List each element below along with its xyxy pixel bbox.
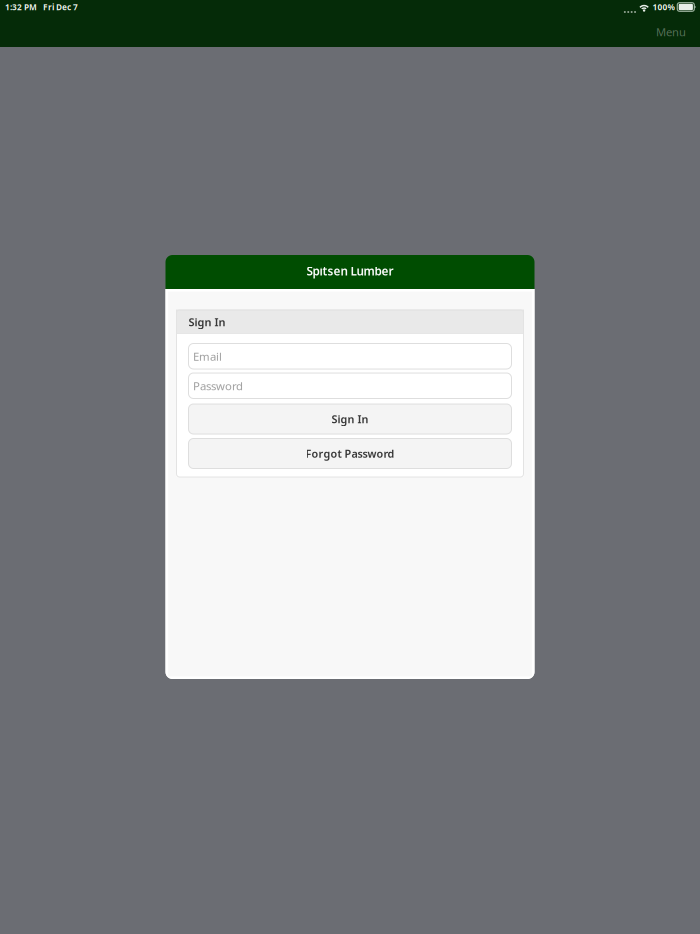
staticText: Password <box>193 378 243 393</box>
staticText: Sign In <box>188 315 225 329</box>
staticText: Menu <box>656 24 686 40</box>
button[interactable]: Forgot Password <box>188 438 511 468</box>
button[interactable]: Menu <box>642 19 700 45</box>
staticText: Forgot Password <box>305 446 394 461</box>
staticText: Sign In <box>331 412 368 426</box>
staticText: 1:32 PM <box>5 1 37 13</box>
button[interactable]: Password <box>188 373 511 398</box>
staticText: Fri Dec 7 <box>37 1 78 13</box>
staticText: 100% <box>652 1 674 13</box>
button[interactable]: Sign In <box>188 404 511 434</box>
staticText: Email <box>193 348 222 364</box>
button[interactable]: Email <box>188 343 511 369</box>
staticText: Spitsen Lumber <box>306 263 393 279</box>
